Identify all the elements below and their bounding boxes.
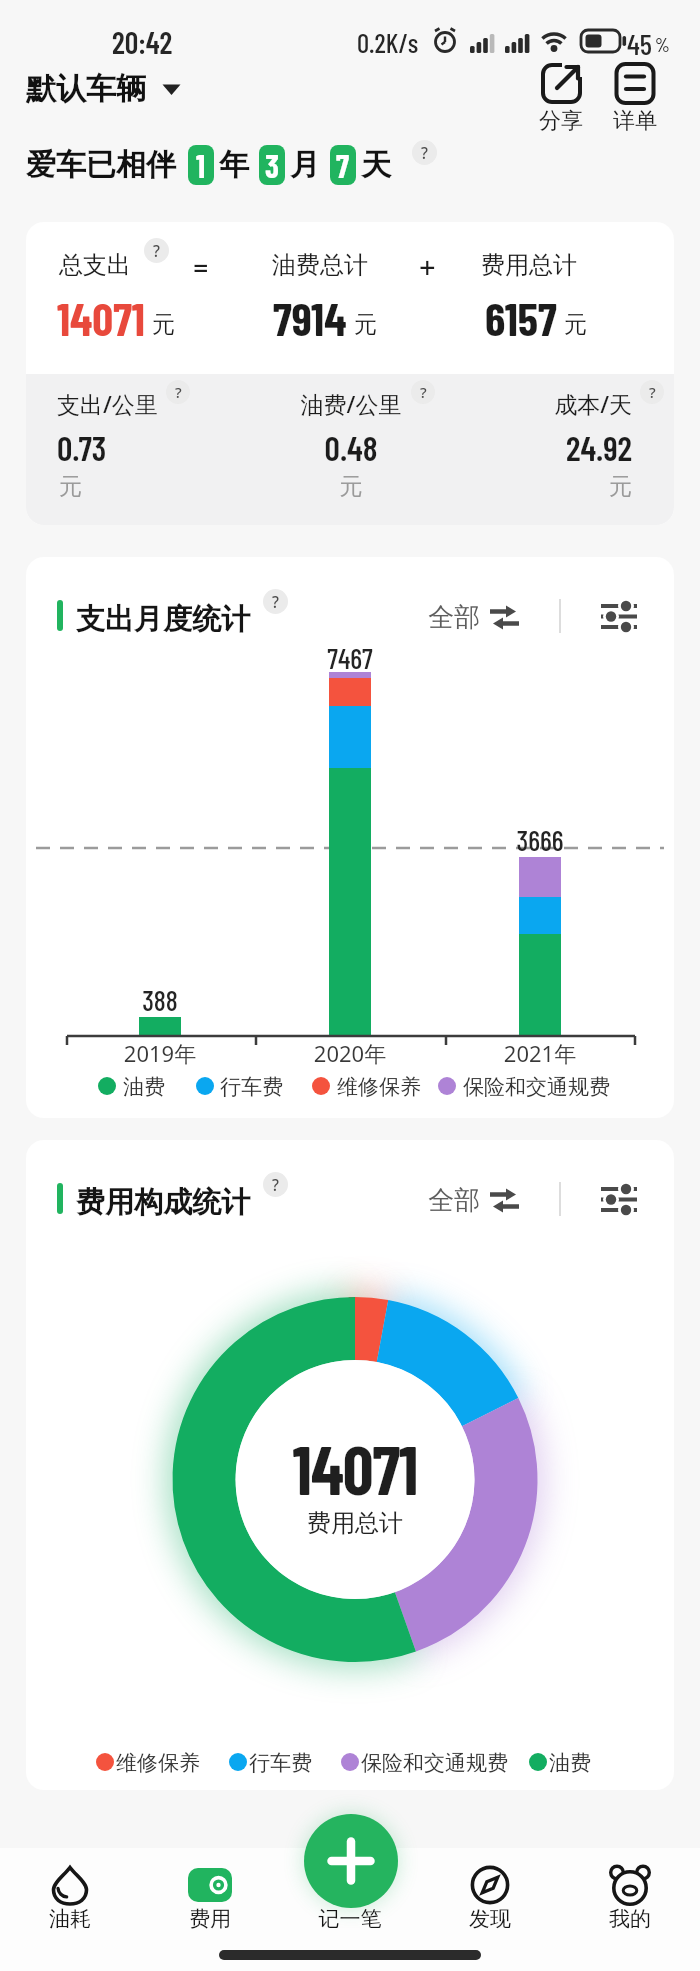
staticText: 天 <box>361 146 391 184</box>
staticText: 支出/公里 <box>57 388 158 419</box>
staticText: 费用总计 <box>255 1508 455 1538</box>
staticText: 14071 <box>205 1427 505 1509</box>
staticText: 总支出 <box>59 250 131 280</box>
staticText: 元 <box>321 472 381 501</box>
button[interactable]: 分享 <box>538 60 584 135</box>
staticText: 成本/天 <box>332 388 632 419</box>
staticText: 元 <box>332 472 632 501</box>
staticText: 3 <box>265 146 279 184</box>
staticText: 1 <box>196 146 206 184</box>
staticText: 6157 <box>485 290 557 345</box>
button[interactable] <box>290 1850 410 1945</box>
button[interactable] <box>570 1850 690 1945</box>
button[interactable] <box>150 1850 270 1945</box>
staticText: 记一笔 <box>280 1906 420 1932</box>
button[interactable]: 默认车辆 <box>26 70 181 108</box>
button[interactable]: 全部 <box>428 601 520 634</box>
staticText: 支出月度统计 <box>76 601 250 638</box>
button[interactable]: 全部 <box>428 1184 520 1217</box>
staticText: 2021年 <box>470 1038 610 1068</box>
staticText: 3666 <box>480 823 600 857</box>
staticText: ? <box>153 240 160 261</box>
staticText: 保险和交通规费 <box>463 1074 610 1100</box>
staticText: 45 <box>627 26 652 61</box>
staticText: 2020年 <box>280 1038 420 1068</box>
staticText: 油费总计 <box>272 250 368 280</box>
staticText: 0.2K/s <box>357 26 419 58</box>
button[interactable]: 详单 <box>612 60 658 135</box>
staticText: 年 <box>219 146 249 184</box>
staticText: ? <box>649 382 656 402</box>
staticText: 爱车已相伴 <box>26 146 176 184</box>
staticText: + <box>419 247 436 286</box>
staticText: 油费 <box>123 1074 165 1100</box>
button[interactable] <box>601 603 639 631</box>
staticText: 发现 <box>430 1906 550 1932</box>
staticText: 14071 <box>57 290 145 345</box>
staticText: 全部 <box>428 1184 480 1217</box>
staticText: 费用构成统计 <box>76 1184 250 1221</box>
staticText: 详单 <box>613 107 657 135</box>
staticText: 2019年 <box>90 1038 230 1068</box>
button[interactable] <box>10 1850 130 1945</box>
staticText: 7914 <box>273 290 347 345</box>
staticText: 费用 <box>150 1906 270 1932</box>
staticText: 默认车辆 <box>26 70 146 108</box>
staticText: 油耗 <box>10 1906 130 1932</box>
staticText: 全部 <box>428 601 480 634</box>
staticText: 元 <box>354 310 377 339</box>
staticText: ? <box>420 382 427 402</box>
staticText: 油费/公里 <box>251 388 451 419</box>
staticText: 费用总计 <box>481 250 577 280</box>
staticText: 388 <box>100 983 220 1017</box>
staticText: 月 <box>290 146 320 184</box>
staticText: % <box>655 33 670 56</box>
staticText: = <box>193 249 209 286</box>
staticText: 我的 <box>570 1906 690 1932</box>
staticText: 元 <box>152 310 175 339</box>
staticText: 7 <box>336 146 350 184</box>
staticText: 元 <box>564 310 587 339</box>
staticText: 7467 <box>290 641 410 675</box>
button[interactable] <box>430 1850 550 1945</box>
staticText: 分享 <box>539 107 583 135</box>
staticText: 20:42 <box>112 24 173 60</box>
staticText: 保险和交通规费 <box>361 1750 508 1776</box>
staticText: 维修保养 <box>337 1074 421 1100</box>
button[interactable] <box>601 1186 639 1214</box>
staticText: 0.48 <box>291 427 411 468</box>
button[interactable] <box>303 1813 399 1909</box>
staticText: 元 <box>59 472 82 501</box>
staticText: 油费 <box>549 1750 591 1776</box>
staticText: 24.92 <box>332 427 632 468</box>
staticText: 行车费 <box>220 1074 283 1100</box>
staticText: 行车费 <box>249 1750 312 1776</box>
staticText: ? <box>175 382 182 402</box>
staticText: ? <box>272 591 279 612</box>
staticText: ? <box>272 1174 279 1195</box>
staticText: ? <box>421 142 428 163</box>
staticText: 0.73 <box>57 427 107 468</box>
staticText: 维修保养 <box>116 1750 200 1776</box>
